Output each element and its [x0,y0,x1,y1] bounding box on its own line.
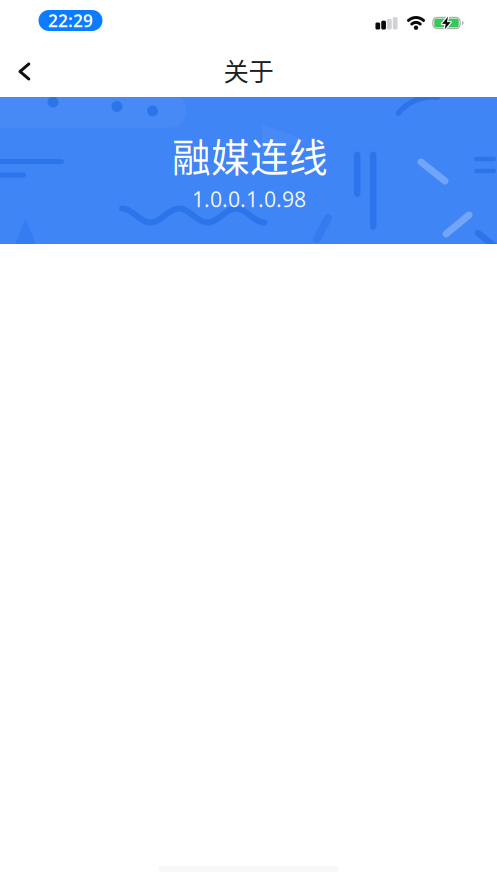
button[interactable]: Back [18,62,32,80]
staticText: 1.0.0.1.0.98 [192,185,306,213]
staticText: 关于 [223,52,273,88]
staticText: 融媒连线 [172,127,328,183]
staticText: 22:29 [48,9,93,32]
button[interactable]: Time, 22:29 [38,10,102,31]
